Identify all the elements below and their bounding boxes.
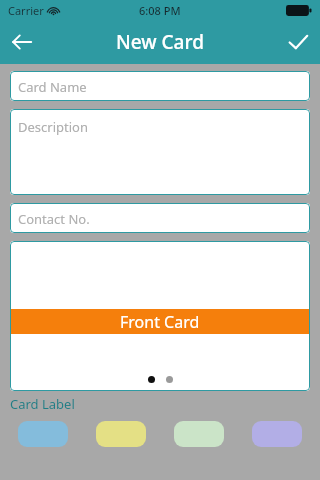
button[interactable]: Label colour 3 bbox=[174, 421, 224, 447]
staticText: Card Label bbox=[10, 395, 75, 413]
button[interactable]: Label colour 2 bbox=[96, 421, 146, 447]
button[interactable]: Card Name bbox=[10, 71, 310, 101]
staticText: Front Card bbox=[120, 311, 200, 333]
button[interactable]: Front Card bbox=[10, 241, 310, 391]
staticText: Contact No. bbox=[18, 210, 90, 228]
button[interactable]: Label colour 4 bbox=[252, 421, 302, 447]
staticText: New Card bbox=[116, 29, 204, 55]
staticText: 6:08 PM bbox=[139, 3, 181, 18]
button[interactable]: Save bbox=[276, 20, 320, 64]
button[interactable]: Back bbox=[0, 20, 44, 64]
button[interactable]: Contact No. bbox=[10, 203, 310, 233]
button[interactable]: Description bbox=[10, 109, 310, 195]
staticText: Description bbox=[18, 118, 88, 136]
staticText: Card Name bbox=[18, 78, 87, 96]
staticText: Carrier bbox=[8, 3, 44, 18]
button[interactable]: Label colour 1 bbox=[18, 421, 68, 447]
